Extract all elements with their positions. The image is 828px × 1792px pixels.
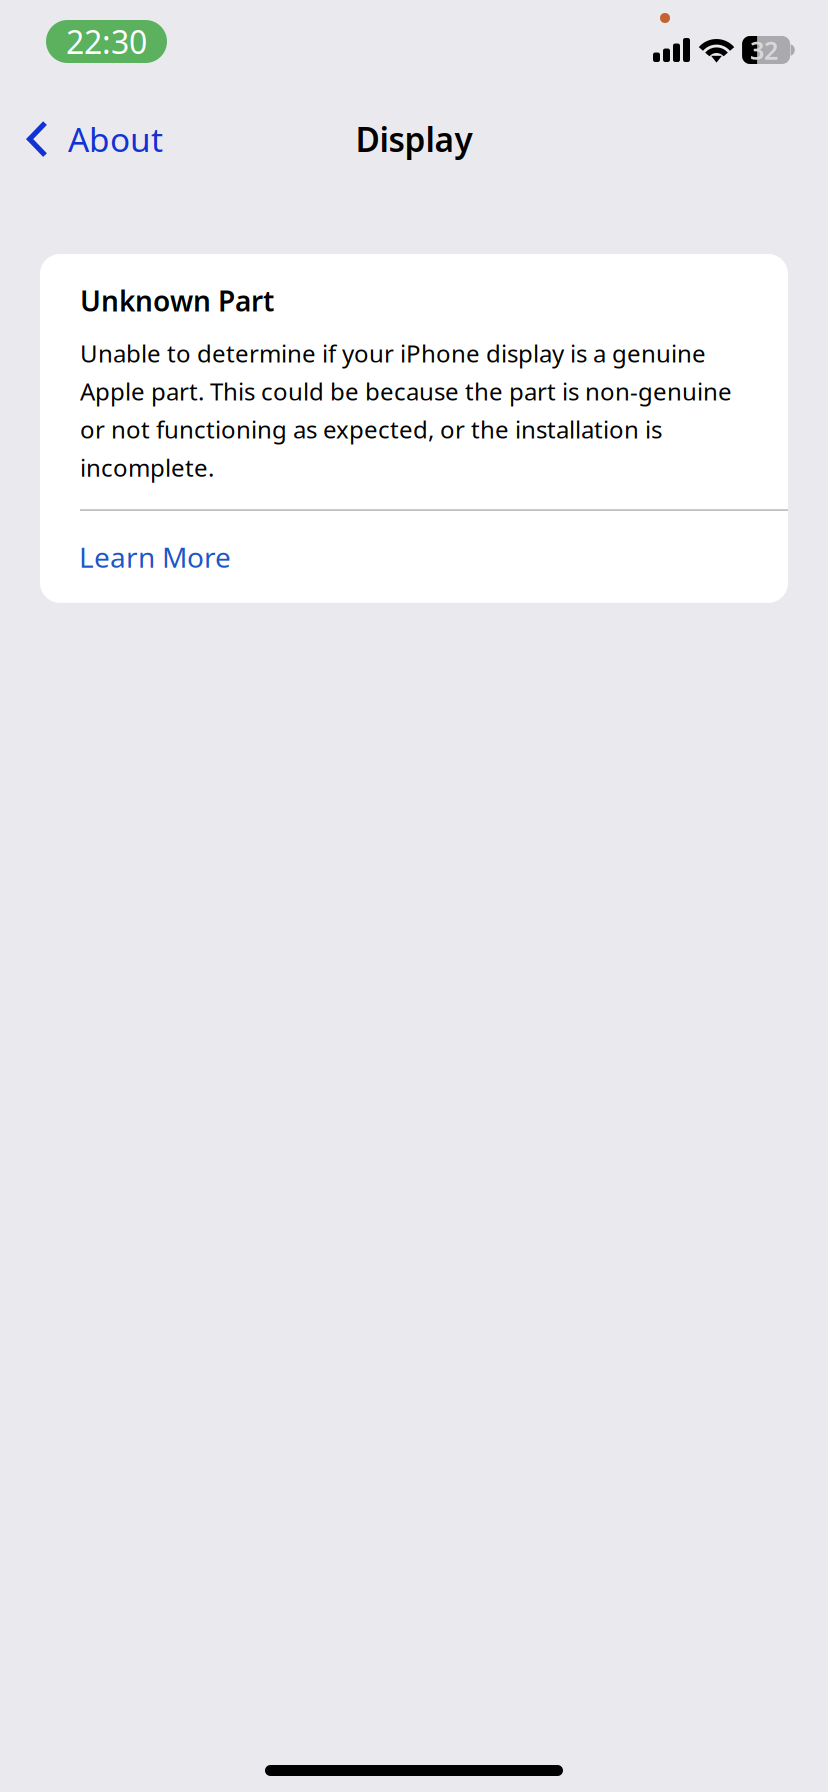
button[interactable]: Back to About <box>0 84 177 180</box>
staticText: Learn More <box>79 538 231 575</box>
staticText: Unknown Part <box>80 282 274 319</box>
staticText: Display <box>355 117 472 161</box>
staticText: Unable to determine if your iPhone displ… <box>80 337 732 483</box>
staticText: 22:30 <box>66 20 147 63</box>
staticText: About <box>68 117 163 161</box>
staticText: 32 <box>750 33 778 67</box>
button[interactable]: Learn More <box>40 511 788 603</box>
